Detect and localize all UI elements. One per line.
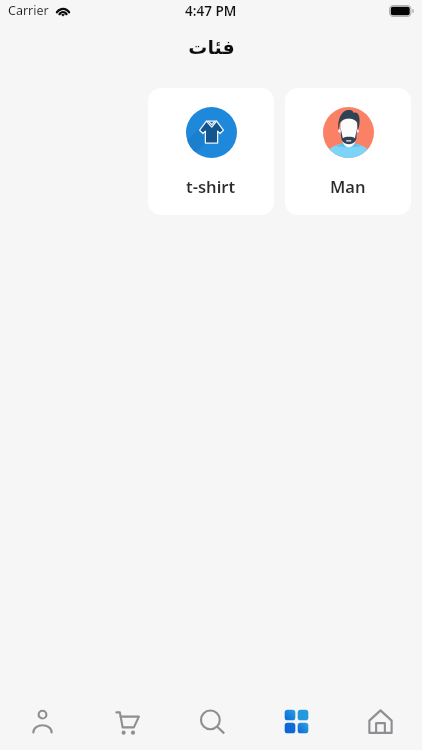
staticText: 4:47 PM xyxy=(185,2,237,20)
button[interactable]: Cart xyxy=(85,688,170,750)
button[interactable]: Man xyxy=(285,88,411,215)
staticText: Man xyxy=(330,175,366,197)
button[interactable]: Home xyxy=(338,688,422,750)
button[interactable]: Categories xyxy=(254,688,338,750)
staticText: t-shirt xyxy=(186,175,236,197)
staticText: فئات xyxy=(188,36,235,58)
button[interactable]: Profile xyxy=(0,688,85,750)
staticText: Carrier xyxy=(8,2,49,19)
button[interactable]: Search xyxy=(170,688,254,750)
button[interactable]: t-shirt xyxy=(148,88,274,215)
